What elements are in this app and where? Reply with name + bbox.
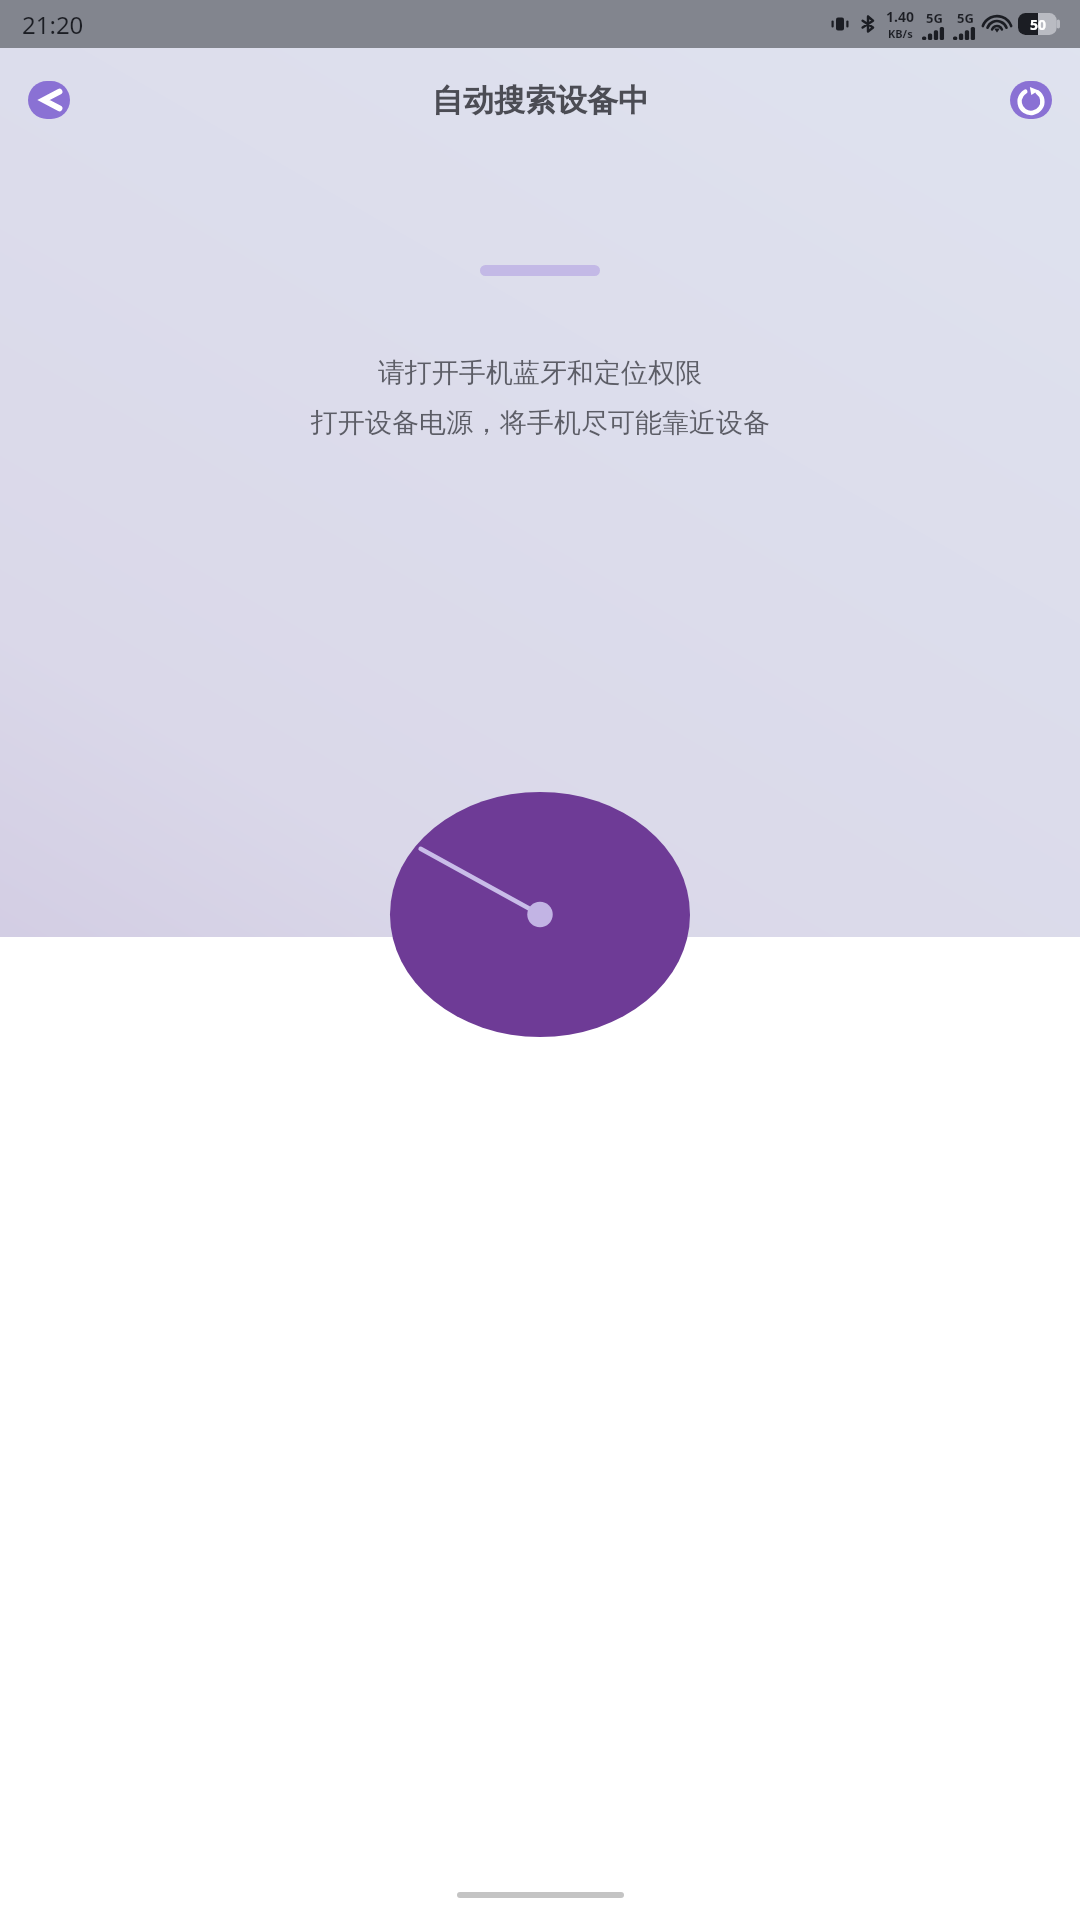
staticText: 打开设备电源，将手机尽可能靠近设备 [311, 406, 770, 440]
staticText: KB/s [888, 26, 913, 41]
staticText: 50 [1030, 15, 1047, 34]
staticText: 5G [957, 9, 974, 27]
button[interactable]: Back [28, 81, 70, 119]
staticText: 5G [926, 9, 943, 27]
staticText: 请打开手机蓝牙和定位权限 [378, 356, 702, 390]
staticText: 1.40 [886, 7, 914, 26]
staticText: 21:20 [22, 8, 84, 41]
staticText: 自动搜索设备中 [432, 81, 649, 120]
button[interactable]: Refresh [1010, 81, 1052, 119]
